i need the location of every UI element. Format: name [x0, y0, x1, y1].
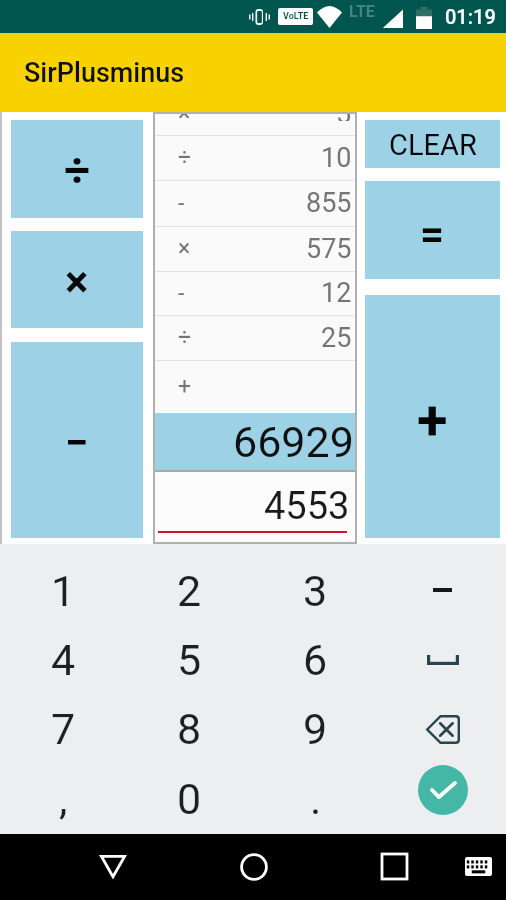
staticText: ×: [178, 235, 191, 262]
button[interactable]: ×: [11, 231, 143, 328]
staticText: 2: [177, 566, 202, 616]
staticText: ÷: [178, 324, 192, 351]
button[interactable]: Home: [230, 843, 277, 890]
staticText: ÷: [64, 143, 91, 197]
button[interactable]: -: [153, 180, 357, 226]
staticText: -: [178, 190, 185, 217]
button[interactable]: 66929: [153, 413, 357, 470]
button[interactable]: Done: [379, 764, 506, 834]
button[interactable]: 4553: [153, 472, 357, 544]
staticText: 5: [177, 635, 202, 685]
staticText: 12: [321, 277, 352, 309]
button[interactable]: .: [252, 764, 379, 834]
staticText: 66929: [233, 417, 354, 467]
staticText: .: [310, 774, 322, 824]
staticText: 4: [51, 635, 76, 685]
button[interactable]: ÷: [153, 315, 357, 360]
staticText: SirPlusminus: [24, 57, 185, 89]
button[interactable]: Space: [379, 625, 506, 694]
button[interactable]: +: [365, 295, 500, 538]
button[interactable]: 7: [0, 694, 126, 764]
button[interactable]: CLEAR: [365, 120, 500, 168]
button[interactable]: ÷: [11, 120, 143, 218]
staticText: =: [420, 210, 445, 259]
button[interactable]: ×: [153, 226, 357, 271]
staticText: 10: [321, 142, 352, 174]
staticText: 855: [306, 187, 352, 219]
staticText: -: [178, 280, 185, 307]
staticText: ÷: [178, 144, 192, 171]
other: Space: [427, 655, 459, 665]
button[interactable]: =: [365, 181, 500, 279]
staticText: +: [417, 387, 448, 453]
staticText: VoLTE: [283, 11, 309, 22]
button[interactable]: [379, 556, 506, 625]
button[interactable]: 1: [0, 556, 126, 625]
staticText: 7: [51, 704, 76, 754]
button[interactable]: 3: [252, 556, 379, 625]
button[interactable]: −: [11, 342, 143, 538]
staticText: ,: [59, 774, 68, 824]
other: Backspace: [426, 715, 460, 744]
staticText: 3: [303, 566, 328, 616]
button[interactable]: -: [153, 271, 357, 315]
staticText: 25: [321, 322, 352, 354]
button[interactable]: 8: [126, 694, 252, 764]
button[interactable]: +: [153, 360, 357, 413]
button[interactable]: ,: [0, 764, 126, 834]
staticText: 1: [51, 566, 76, 616]
button[interactable]: Back: [89, 843, 136, 890]
staticText: 0: [177, 774, 202, 824]
staticText: 4553: [264, 484, 350, 529]
button[interactable]: Recents: [371, 843, 418, 890]
staticText: 01:19: [445, 5, 496, 28]
staticText: 6: [303, 635, 328, 685]
button[interactable]: Done: [418, 765, 468, 815]
button[interactable]: Backspace: [379, 694, 506, 764]
button[interactable]: 2: [126, 556, 252, 625]
staticText: ×: [178, 112, 191, 123]
staticText: 9: [303, 704, 328, 754]
staticText: ×: [65, 256, 89, 308]
staticText: 8: [177, 704, 202, 754]
staticText: 575: [306, 233, 352, 265]
staticText: LTE: [349, 2, 375, 21]
staticText: +: [178, 373, 192, 400]
staticText: 5: [336, 112, 352, 121]
button[interactable]: 6: [252, 625, 379, 694]
staticText: CLEAR: [389, 128, 477, 162]
button[interactable]: Keyboard: [455, 843, 502, 890]
button[interactable]: ÷: [153, 135, 357, 180]
button[interactable]: 4: [0, 625, 126, 694]
button[interactable]: 5: [126, 625, 252, 694]
button[interactable]: 9: [252, 694, 379, 764]
button[interactable]: 0: [126, 764, 252, 834]
staticText: −: [65, 418, 89, 467]
